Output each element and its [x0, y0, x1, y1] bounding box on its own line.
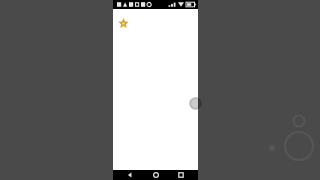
button[interactable]: Back	[121, 170, 139, 180]
button[interactable]: Home	[147, 170, 165, 180]
button[interactable]: Favourite	[118, 18, 129, 29]
button[interactable]: Floating handle	[189, 97, 202, 110]
button[interactable]: Recent apps	[172, 170, 190, 180]
